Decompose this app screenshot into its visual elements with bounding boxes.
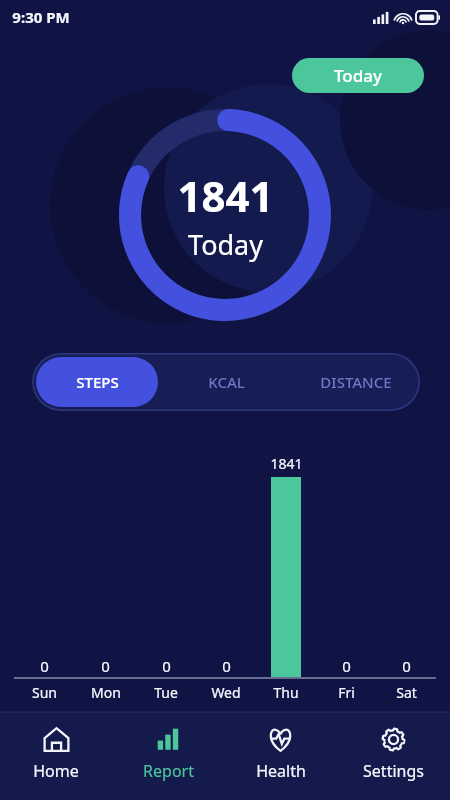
staticText: STEPS [76,372,119,392]
staticText: 1841 [177,167,274,224]
other: Home [43,726,70,753]
staticText: 1841 [270,454,303,473]
staticText: 0 [402,656,411,676]
staticText: KCAL [208,372,245,392]
button[interactable]: Home [0,720,112,800]
button[interactable]: Health [224,720,337,800]
staticText: Today [334,64,382,87]
staticText: 0 [342,656,351,676]
staticText: Today [188,226,263,263]
staticText: Wed [211,683,241,702]
button[interactable]: DISTANCE [291,353,420,411]
staticText: Home [33,760,79,782]
staticText: 0 [222,656,231,676]
staticText: Sun [32,683,57,702]
staticText: DISTANCE [320,372,392,392]
staticText: Tue [154,683,178,702]
staticText: 0 [101,656,110,676]
button[interactable]: Settings [337,720,450,800]
staticText: Report [143,760,194,782]
staticText: Settings [363,760,424,782]
staticText: Health [256,760,306,782]
button[interactable]: Report [112,720,224,800]
staticText: Fri [338,683,355,702]
staticText: 0 [40,656,49,676]
other: Health [267,726,294,753]
button[interactable]: KCAL [162,353,291,411]
staticText: 9:30 PM [12,7,70,27]
staticText: Sat [396,683,417,702]
staticText: Thu [273,683,299,702]
other: Report [155,726,182,753]
staticText: Mon [91,683,121,702]
other: Settings [380,726,407,753]
staticText: 0 [162,656,171,676]
button[interactable]: Today [292,58,424,93]
button[interactable]: STEPS [36,357,158,407]
